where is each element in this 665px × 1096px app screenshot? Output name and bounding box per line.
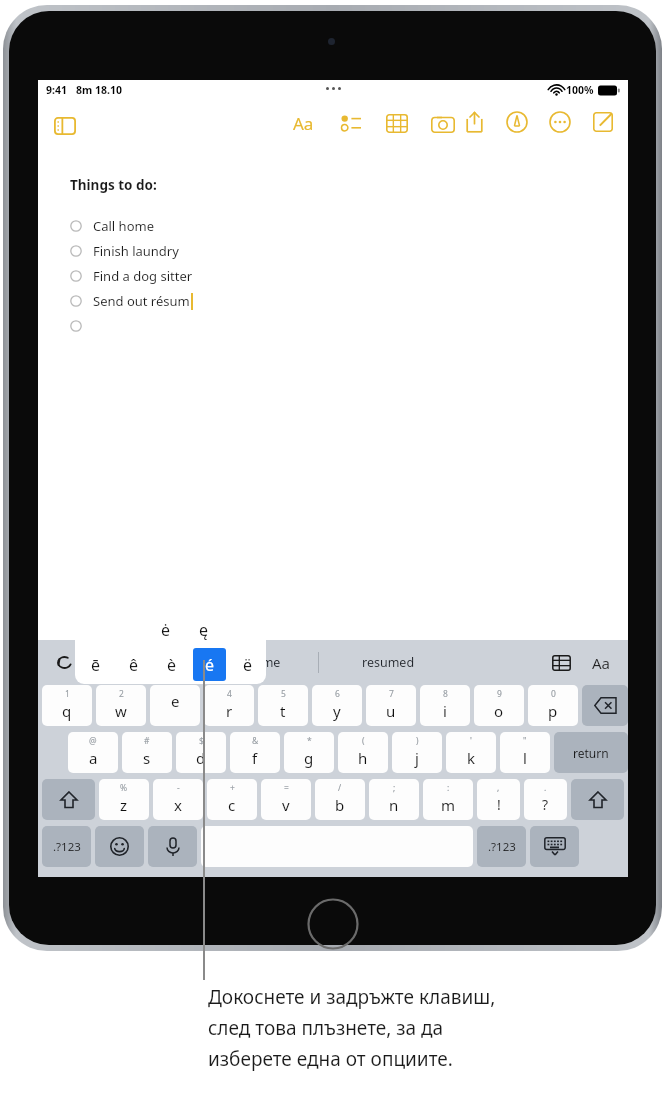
button[interactable]: . <box>524 779 567 820</box>
button[interactable]: e <box>150 685 200 726</box>
button[interactable]: Checklist <box>336 108 366 138</box>
button[interactable]: 0 <box>528 685 578 726</box>
button[interactable]: .?123 <box>477 826 526 867</box>
staticText: след това плъзнете, за да <box>208 1015 444 1041</box>
staticText: ē <box>91 654 101 676</box>
button[interactable]: % <box>99 779 149 820</box>
staticText: .?123 <box>53 839 81 855</box>
button[interactable]: Table <box>548 650 574 676</box>
button[interactable]: / <box>315 779 365 820</box>
button[interactable]: Share <box>459 107 489 137</box>
button[interactable]: : <box>423 779 473 820</box>
button[interactable]: 8 <box>420 685 470 726</box>
button[interactable]: 5 <box>258 685 308 726</box>
button[interactable]: ę <box>187 614 220 645</box>
staticText: m <box>441 795 456 815</box>
button[interactable]: 2 <box>96 685 146 726</box>
button[interactable] <box>70 313 350 338</box>
button[interactable]: ë <box>231 648 264 681</box>
button[interactable]: è <box>155 648 188 681</box>
button[interactable]: # <box>122 732 172 773</box>
staticText: ê <box>129 654 139 676</box>
button[interactable]: = <box>261 779 311 820</box>
staticText: x <box>174 795 182 815</box>
staticText: 7 <box>389 688 394 700</box>
button[interactable]: * <box>284 732 334 773</box>
staticText: .?123 <box>488 839 516 855</box>
button[interactable]: Sidebar <box>50 111 80 141</box>
button[interactable]: ) <box>392 732 442 773</box>
button[interactable]: é <box>193 648 226 681</box>
button[interactable]: New note <box>588 107 618 137</box>
button[interactable]: return <box>554 732 628 773</box>
button[interactable]: + <box>207 779 257 820</box>
staticText: z <box>120 795 128 815</box>
staticText: $ <box>199 735 204 747</box>
staticText: / <box>338 782 342 794</box>
button[interactable]: ē <box>79 648 112 681</box>
button[interactable] <box>582 685 628 726</box>
staticText: 8m 18.10 <box>76 83 122 97</box>
staticText: - <box>177 782 180 794</box>
button[interactable]: Format <box>286 108 320 138</box>
staticText: изберете една от опциите. <box>208 1046 453 1072</box>
button[interactable]: ( <box>338 732 388 773</box>
button[interactable]: 7 <box>366 685 416 726</box>
staticText: " <box>523 735 527 747</box>
staticText: resumed <box>362 654 415 671</box>
button[interactable]: More <box>545 107 575 137</box>
button[interactable]: 6 <box>312 685 362 726</box>
button[interactable]: , <box>477 779 520 820</box>
button[interactable]: ; <box>369 779 419 820</box>
button[interactable]: Undo <box>52 650 78 676</box>
button[interactable]: ê <box>117 648 150 681</box>
button[interactable]: ' <box>446 732 496 773</box>
button[interactable]: Space <box>201 826 473 867</box>
staticText: ! <box>497 795 501 814</box>
button[interactable]: ė <box>149 614 182 645</box>
button[interactable]: - <box>153 779 203 820</box>
staticText: g <box>304 748 314 768</box>
button[interactable]: Table <box>382 108 412 138</box>
button[interactable]: @ <box>68 732 118 773</box>
staticText: Call home <box>93 217 154 235</box>
button[interactable]: Find a dog sitter <box>70 263 350 288</box>
button[interactable]: Call home <box>70 213 350 238</box>
button[interactable]: resumed <box>323 640 453 685</box>
staticText: p <box>548 701 558 721</box>
button[interactable]: 1 <box>42 685 92 726</box>
staticText: w <box>115 701 127 721</box>
button[interactable]: 9 <box>474 685 524 726</box>
button[interactable]: resume <box>198 640 318 685</box>
button[interactable]: Send out résum <box>70 288 350 313</box>
staticText: . <box>544 782 547 794</box>
staticText: return <box>573 745 609 761</box>
button[interactable]: & <box>230 732 280 773</box>
staticText: Докоснете и задръжте клавиш, <box>208 984 496 1010</box>
staticText: j <box>415 748 419 768</box>
staticText: a <box>89 748 98 768</box>
staticText: s <box>143 748 151 768</box>
button[interactable] <box>42 779 95 820</box>
staticText: n <box>389 795 399 815</box>
button[interactable]: Camera <box>428 108 458 138</box>
staticText: ė <box>161 619 171 641</box>
staticText: Aa <box>592 653 611 673</box>
button[interactable]: Finish laundry <box>70 238 350 263</box>
button[interactable]: 4 <box>204 685 254 726</box>
staticText: v <box>282 795 290 815</box>
staticText: b <box>335 795 345 815</box>
button[interactable] <box>571 779 624 820</box>
staticText: l <box>523 748 527 768</box>
button[interactable]: " <box>500 732 550 773</box>
button[interactable] <box>95 826 144 867</box>
staticText: Things to do: <box>70 176 157 194</box>
staticText: é <box>205 654 215 676</box>
staticText: e <box>171 691 180 711</box>
button[interactable]: $ <box>176 732 226 773</box>
button[interactable]: .?123 <box>42 826 91 867</box>
button[interactable]: Markup <box>502 107 532 137</box>
button[interactable] <box>530 826 579 867</box>
button[interactable] <box>148 826 197 867</box>
button[interactable]: Aa <box>586 650 616 676</box>
